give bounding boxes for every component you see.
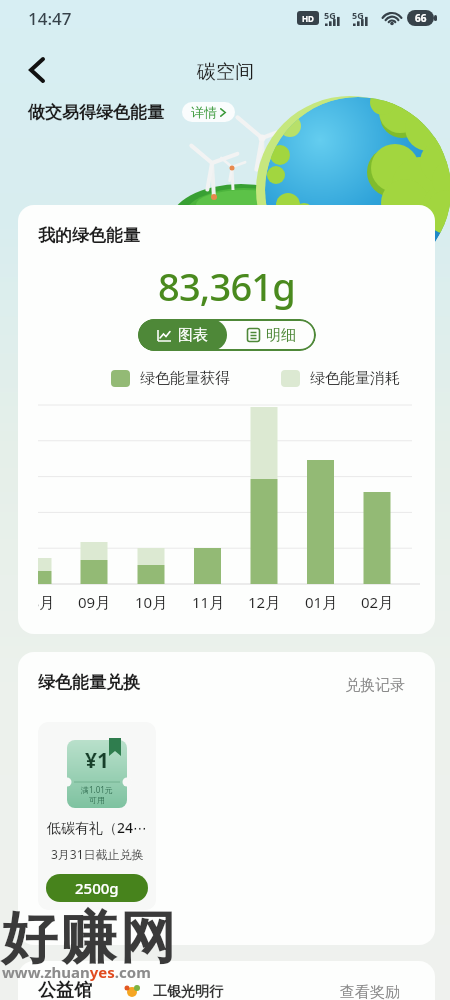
button[interactable]: 查看奖励 [340,983,400,1000]
staticText: 10月 [135,592,168,612]
staticText: 绿色能量消耗 [310,369,400,388]
staticText: 明细 [266,326,296,345]
staticText: 11月 [192,592,225,612]
staticText: 好赚网 [0,903,177,974]
button[interactable]: 详情 [182,102,235,122]
button[interactable]: 兑换记录 [345,676,405,695]
staticText: 09月 [78,592,111,612]
staticText: 查看奖励 [340,983,400,1000]
staticText: 我的绿色能量 [38,225,140,246]
staticText: 可用 [89,795,105,805]
staticText: 工银光明行 [153,983,223,1000]
staticText: 66 [415,11,427,25]
button[interactable]: 图表 [138,319,227,351]
staticText: 详情 [191,104,217,120]
staticText: www.zhuanyes.com [2,962,151,982]
staticText: 01月 [305,592,338,612]
staticText: ¥1 [85,746,110,775]
staticText: 绿色能量兑换 [38,672,140,693]
button[interactable]: ¥1 [38,722,156,910]
button[interactable] [28,58,46,82]
staticText: 兑换记录 [345,676,405,695]
staticText: 公益馆 [38,979,92,1000]
staticText: 02月 [361,592,394,612]
staticText: 14:47 [28,7,72,30]
staticText: HD [302,13,314,24]
staticText: 满1.01元 [81,784,113,795]
button[interactable]: 2500g [46,874,148,902]
staticText: 低碳有礼（24⋯ [47,818,148,837]
staticText: 碳空间 [197,60,254,84]
staticText: 3月31日截止兑换 [51,846,144,862]
staticText: 5G [352,9,364,21]
staticText: 绿色能量获得 [140,369,230,388]
button[interactable]: 明细 [227,319,316,351]
staticText: 做交易得绿色能量 [28,102,164,123]
staticText: 83,361g [158,260,296,312]
staticText: 图表 [178,326,208,345]
staticText: 5G [324,9,336,21]
staticText: 2500g [75,878,119,898]
staticText: 12月 [248,592,281,612]
staticText: 08月 [38,592,55,612]
